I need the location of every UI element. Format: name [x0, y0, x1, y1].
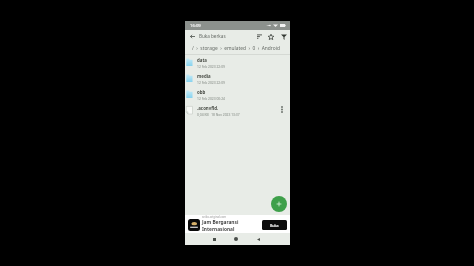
- staticText: data: [197, 57, 207, 63]
- staticText: 16:09: [190, 23, 201, 29]
- button[interactable]: Home: [230, 233, 242, 245]
- staticText: seiko-original.com: [202, 215, 227, 219]
- button[interactable]: Recent apps: [208, 233, 220, 245]
- button[interactable]: Back: [252, 233, 264, 245]
- button[interactable]: .aconvfld.: [185, 102, 290, 118]
- staticText: Buka berkas: [199, 33, 226, 39]
- staticText: 0,04 KB 18 Nov 2023 13:37: [197, 112, 240, 116]
- button[interactable]: Sort: [253, 31, 265, 42]
- staticText: media: [197, 73, 211, 79]
- button[interactable]: media: [185, 70, 290, 86]
- staticText: .aconvfld.: [197, 105, 219, 111]
- button[interactable]: Buka: [262, 220, 287, 230]
- button[interactable]: Filter: [277, 31, 290, 42]
- staticText: obb: [197, 89, 206, 95]
- staticText: 12 Feb 2023 22:09: [197, 80, 225, 84]
- button[interactable]: Back: [188, 32, 197, 41]
- staticText: Jam Bergaransi: [202, 219, 239, 226]
- staticText: / › storage › emulated › 0 › Android: [192, 45, 280, 52]
- staticText: Internasional: [202, 226, 235, 233]
- button[interactable]: Add: [271, 196, 287, 212]
- staticText: 12 Feb 2023 22:09: [197, 64, 225, 68]
- button[interactable]: data: [185, 54, 290, 70]
- staticText: Buka: [270, 223, 279, 228]
- button[interactable]: Favorite: [265, 31, 277, 42]
- button[interactable]: More options: [280, 105, 284, 113]
- button[interactable]: obb: [185, 86, 290, 102]
- staticText: 12 Feb 2023 00:24: [197, 96, 225, 100]
